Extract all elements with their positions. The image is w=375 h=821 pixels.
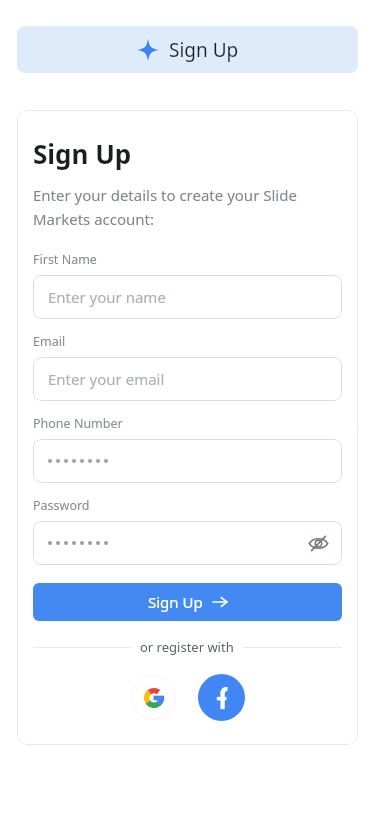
staticText: First Name (33, 251, 97, 268)
button[interactable]: Sign Up (33, 583, 342, 621)
button[interactable]: Hide password (33, 521, 342, 565)
button[interactable] (33, 439, 342, 483)
staticText: Enter your name (48, 287, 166, 307)
staticText: Sign Up (169, 37, 239, 63)
staticText: Phone Number (33, 415, 123, 432)
button[interactable]: Sign Up (17, 26, 358, 73)
button[interactable]: Enter your email (33, 357, 342, 401)
button[interactable]: Enter your name (33, 275, 342, 319)
staticText: Email (33, 333, 66, 350)
button[interactable]: Sign up with Google (131, 675, 176, 720)
staticText: or register with (140, 638, 234, 656)
staticText: Password (33, 497, 90, 514)
button[interactable]: Hide password (302, 527, 334, 559)
staticText: Enter your details to create your Slide … (33, 185, 342, 229)
staticText: Sign Up (148, 592, 203, 612)
button[interactable]: Sign up with Facebook (198, 674, 245, 721)
staticText: Sign Up (33, 136, 132, 171)
staticText: Enter your email (48, 369, 165, 389)
